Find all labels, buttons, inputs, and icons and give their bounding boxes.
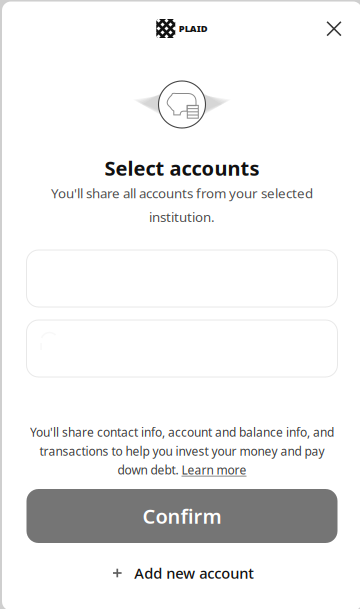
button[interactable]: Add new account: [73, 555, 293, 591]
staticText: transactions to help you invest your mon…: [39, 443, 324, 459]
staticText: You'll share contact info, account and b…: [30, 424, 334, 440]
button[interactable]: Learn more: [181, 462, 246, 478]
staticText: Confirm: [142, 503, 221, 529]
button[interactable]: Confirm: [26, 489, 337, 543]
staticText: institution.: [149, 208, 215, 226]
button[interactable]: Close: [312, 7, 356, 51]
staticText: You'll share all accounts from your sele…: [51, 184, 313, 202]
staticText: PLAID: [179, 22, 208, 35]
staticText: Add new account: [134, 563, 254, 583]
staticText: Select accounts: [104, 155, 259, 181]
staticText: Learn more: [181, 462, 246, 478]
staticText: down debt.: [117, 462, 178, 478]
